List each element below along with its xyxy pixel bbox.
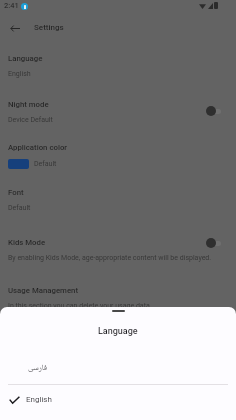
button[interactable]: Toggle <box>204 236 223 250</box>
staticText: In this section you can delete your usag… <box>8 302 150 310</box>
staticText: Default <box>34 160 57 168</box>
button[interactable]: Kids Mode <box>0 234 236 266</box>
staticText: Default <box>8 204 31 212</box>
staticText: Kids Mode <box>8 238 46 247</box>
button[interactable]: English <box>0 387 236 412</box>
button[interactable]: Toggle <box>204 104 223 118</box>
button[interactable]: Language <box>0 50 236 82</box>
staticText: Settings <box>34 23 64 32</box>
button[interactable]: Font <box>0 184 236 216</box>
staticText: English <box>8 70 31 78</box>
staticText: 2:41 <box>4 1 19 10</box>
staticText: Device Default <box>8 116 53 124</box>
staticText: English <box>26 395 52 404</box>
button[interactable]: Back <box>4 17 26 39</box>
button[interactable]: فارسی <box>0 355 236 380</box>
staticText: By enabling Kids Mode, age-appropriate c… <box>8 254 212 262</box>
button[interactable]: Usage Management <box>0 282 236 314</box>
staticText: Night mode <box>8 100 49 109</box>
staticText: Usage Management <box>8 286 78 295</box>
button[interactable]: Application color <box>0 139 236 171</box>
staticText: فارسی <box>28 361 48 375</box>
staticText: Application color <box>8 143 68 152</box>
button[interactable]: Night mode <box>0 96 236 128</box>
staticText: Language <box>8 54 43 63</box>
staticText: Language <box>98 326 138 337</box>
staticText: Font <box>8 188 24 197</box>
